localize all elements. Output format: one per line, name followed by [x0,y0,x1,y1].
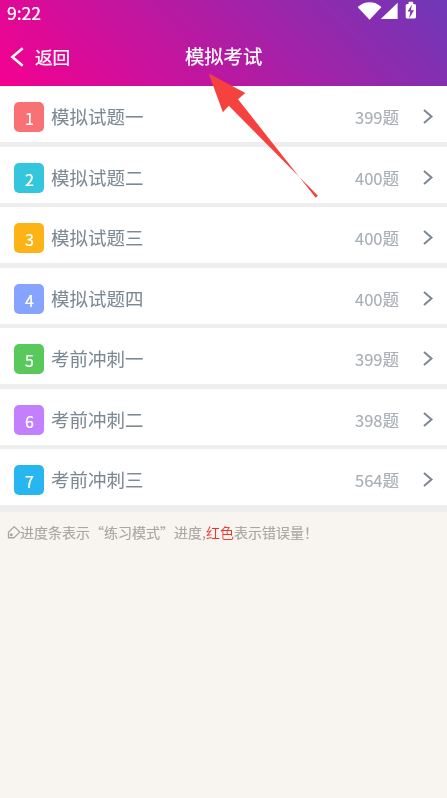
staticText: 9:22 [7,0,42,25]
staticText: 考前冲刺二 [51,406,144,433]
staticText: 400题 [355,226,399,250]
staticText: 2 [25,167,34,190]
staticText: 模拟试题三 [51,224,144,251]
staticText: 进度条表示“练习模式”进度,红色表示错误量！ [20,522,318,542]
staticText: 返回 [35,44,71,69]
staticText: 400题 [355,166,399,190]
button[interactable]: 6 [0,389,447,445]
staticText: 4 [25,288,34,311]
staticText: 模拟试题二 [51,164,144,191]
staticText: 考前冲刺一 [51,345,144,372]
staticText: 564题 [355,468,399,492]
staticText: 399题 [355,105,399,129]
button[interactable]: 4 [0,268,447,324]
staticText: 1 [25,106,34,129]
button[interactable]: 7 [0,449,447,505]
staticText: 3 [25,227,34,250]
staticText: 6 [25,409,34,432]
button[interactable]: 3 [0,207,447,263]
staticText: 考前冲刺三 [51,466,144,493]
staticText: 5 [25,348,34,371]
staticText: 399题 [355,347,399,371]
staticText: 模拟考试 [185,42,263,70]
staticText: 模拟试题一 [51,103,144,130]
staticText: 398题 [355,408,399,432]
staticText: 7 [25,469,34,492]
button[interactable]: 1 [0,86,447,142]
staticText: 模拟试题四 [51,285,144,312]
button[interactable]: 2 [0,147,447,203]
button[interactable]: 5 [0,328,447,384]
staticText: 400题 [355,287,399,311]
button[interactable]: 返回 [0,36,85,77]
